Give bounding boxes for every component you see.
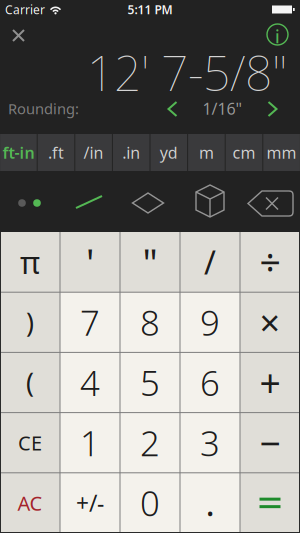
button[interactable]: Length mode	[60, 171, 120, 232]
staticText: i	[275, 25, 280, 48]
staticText: "	[142, 237, 157, 287]
button[interactable]: Equals	[240, 473, 300, 533]
staticText: m	[199, 142, 214, 163]
button[interactable]: ÷	[240, 232, 300, 292]
staticText: Carrier	[5, 1, 45, 17]
staticText: 5:11 PM	[127, 1, 172, 17]
button[interactable]: /in	[75, 134, 112, 171]
button[interactable]: 2	[120, 413, 180, 473]
button[interactable]: )	[0, 292, 60, 352]
staticText: 1/16"	[202, 98, 242, 119]
staticText: AC	[17, 490, 42, 516]
button[interactable]: Finer rounding	[267, 101, 278, 115]
button[interactable]: .ft	[38, 134, 74, 171]
staticText: 2	[140, 420, 160, 466]
button[interactable]: Coarser rounding	[167, 101, 178, 115]
button[interactable]: (	[0, 352, 60, 413]
button[interactable]: 9	[180, 292, 240, 352]
button[interactable]: "	[120, 232, 180, 292]
staticText: 4	[80, 359, 100, 405]
button[interactable]: Backspace	[240, 171, 300, 232]
button[interactable]: 0	[120, 473, 180, 533]
staticText: cm	[232, 142, 255, 163]
staticText: (	[26, 365, 34, 400]
button[interactable]: Info	[265, 19, 290, 48]
button[interactable]: .in	[113, 134, 149, 171]
button[interactable]: mm	[263, 134, 300, 171]
staticText: π	[20, 242, 40, 282]
button[interactable]: 3	[180, 413, 240, 473]
button[interactable]: m	[188, 134, 225, 171]
button[interactable]: +	[240, 352, 300, 413]
staticText: 9	[200, 299, 220, 345]
button[interactable]: 6	[180, 352, 240, 413]
staticText: ft-in	[2, 142, 34, 163]
button[interactable]: 8	[120, 292, 180, 352]
staticText: .in	[122, 142, 140, 163]
button[interactable]: 1/16"	[178, 98, 267, 118]
staticText: .	[205, 480, 214, 526]
button[interactable]: /	[180, 232, 240, 292]
button[interactable]: 7	[60, 292, 120, 352]
button[interactable]: π	[0, 232, 60, 292]
button[interactable]: cm	[226, 134, 262, 171]
button[interactable]: yd	[150, 134, 187, 171]
staticText: 3	[200, 420, 220, 466]
staticText: mm	[267, 142, 297, 163]
staticText: +	[259, 358, 280, 407]
staticText: .ft	[48, 142, 64, 163]
button[interactable]: Pages	[0, 171, 60, 232]
staticText: 7	[80, 299, 100, 345]
staticText: CE	[18, 429, 42, 456]
staticText: ÷	[259, 237, 280, 287]
button[interactable]: .	[180, 473, 240, 533]
button[interactable]: AC	[0, 473, 60, 533]
button[interactable]: −	[240, 413, 300, 473]
staticText: 0	[140, 480, 160, 526]
staticText: yd	[160, 142, 178, 163]
staticText: /	[204, 241, 216, 283]
staticText: '	[86, 237, 94, 287]
staticText: −	[259, 418, 280, 467]
button[interactable]: Area mode	[120, 171, 180, 232]
staticText: 5	[140, 359, 160, 405]
staticText: 6	[200, 359, 220, 405]
staticText: Rounding:	[8, 99, 79, 118]
button[interactable]: 4	[60, 352, 120, 413]
staticText: 1	[80, 420, 100, 466]
staticText: +/-	[76, 488, 104, 518]
button[interactable]: 5	[120, 352, 180, 413]
staticText: 8	[140, 299, 160, 345]
staticText: )	[26, 305, 34, 340]
button[interactable]: +/-	[60, 473, 120, 533]
staticText: 12' 7-5/8"	[87, 41, 287, 104]
button[interactable]: ft-in	[0, 134, 37, 171]
button[interactable]: '	[60, 232, 120, 292]
staticText: /in	[84, 142, 104, 163]
button[interactable]: CE	[0, 413, 60, 473]
button[interactable]: Volume mode	[180, 171, 240, 232]
staticText: ×	[259, 298, 280, 346]
button[interactable]: Close	[6, 19, 31, 48]
button[interactable]: ×	[240, 292, 300, 352]
button[interactable]: 1	[60, 413, 120, 473]
